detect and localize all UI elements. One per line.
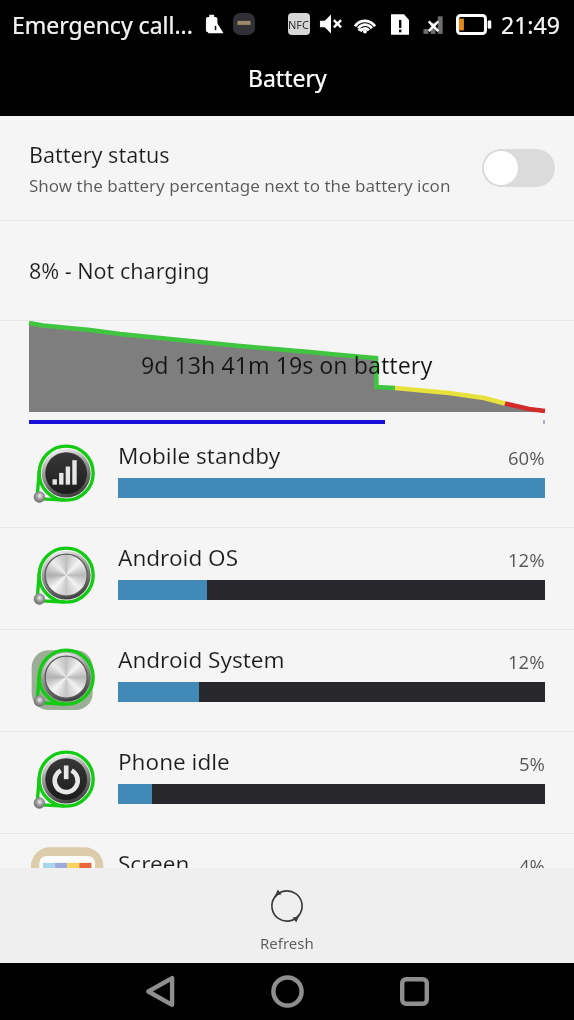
button[interactable]: Recents — [351, 963, 478, 1020]
staticText: Battery status — [29, 140, 170, 169]
staticText: NFC — [288, 17, 310, 32]
button[interactable]: Android System — [0, 630, 574, 731]
staticText: 8% - Not charging — [29, 256, 210, 285]
staticText: 12% — [508, 547, 545, 572]
staticText: Phone idle — [118, 746, 230, 777]
staticText: Android OS — [118, 542, 238, 573]
button[interactable]: Android OS — [0, 528, 574, 629]
button[interactable]: Phone idle — [0, 732, 574, 833]
staticText: Emergency call... — [12, 9, 193, 40]
staticText: Refresh — [260, 933, 314, 953]
staticText: Screen — [118, 848, 190, 868]
button[interactable]: Home — [224, 963, 351, 1020]
button[interactable]: Mobile standby — [0, 426, 574, 527]
staticText: Android System — [118, 644, 285, 675]
button[interactable]: Screen — [0, 834, 574, 868]
button[interactable]: Back — [97, 963, 224, 1020]
staticText: Battery — [248, 62, 327, 93]
staticText: 21:49 — [501, 9, 560, 40]
staticText: 60% — [508, 445, 545, 470]
staticText: 12% — [508, 649, 545, 674]
staticText: 5% — [519, 751, 545, 776]
button[interactable]: Battery status — [0, 116, 574, 220]
staticText: Show the battery percentage next to the … — [29, 174, 451, 197]
staticText: 9d 13h 41m 19s on battery — [141, 349, 433, 381]
staticText: 4% — [519, 853, 545, 868]
staticText: Mobile standby — [118, 440, 281, 471]
button[interactable]: Refresh — [0, 868, 574, 963]
